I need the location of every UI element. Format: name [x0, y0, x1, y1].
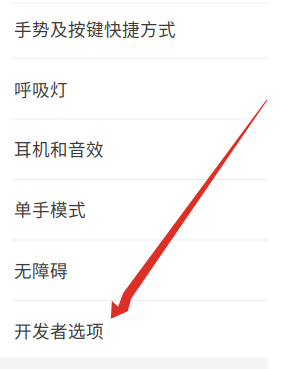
staticText: 无障碍 — [14, 257, 68, 282]
button[interactable]: 无障碍 — [0, 239, 302, 300]
button[interactable]: 耳机和音效 — [0, 118, 302, 179]
staticText: 手势及按键快捷方式 — [14, 16, 176, 41]
button[interactable]: 开发者选项 — [0, 300, 302, 357]
staticText: 耳机和音效 — [14, 136, 104, 161]
staticText: 呼吸灯 — [14, 76, 68, 101]
button[interactable]: 呼吸灯 — [0, 58, 302, 118]
staticText: 单手模式 — [14, 196, 86, 221]
staticText: 开发者选项 — [14, 317, 104, 343]
button[interactable]: 单手模式 — [0, 179, 302, 239]
button[interactable]: 手势及按键快捷方式 — [0, 2, 302, 58]
